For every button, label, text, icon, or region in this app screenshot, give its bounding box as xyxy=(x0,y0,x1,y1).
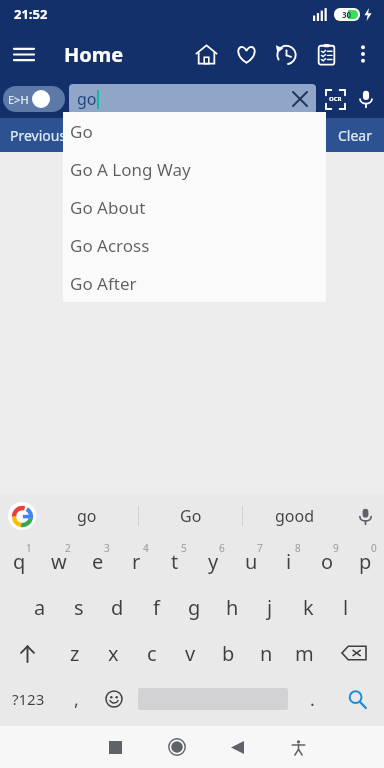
staticText: c xyxy=(147,640,157,667)
button[interactable]: Clear xyxy=(326,118,384,152)
staticText: z xyxy=(70,640,80,667)
staticText: Go A Long Way xyxy=(70,158,191,181)
button[interactable]: Backspace xyxy=(323,630,384,676)
staticText: OCR xyxy=(329,95,342,103)
button[interactable]: p xyxy=(346,538,384,584)
staticText: 21:52 xyxy=(14,5,48,23)
button[interactable]: More options xyxy=(346,30,380,78)
staticText: y xyxy=(208,548,219,575)
staticText: g xyxy=(188,594,201,621)
button[interactable]: f xyxy=(137,584,175,630)
button[interactable]: z xyxy=(55,630,94,676)
button[interactable]: j xyxy=(251,584,289,630)
button[interactable]: Scan text with camera xyxy=(320,84,350,114)
staticText: 9 xyxy=(333,541,339,555)
button[interactable]: Go About xyxy=(63,188,326,226)
button[interactable]: . xyxy=(293,676,331,722)
staticText: t xyxy=(171,548,179,575)
button[interactable]: x xyxy=(94,630,133,676)
staticText: q xyxy=(13,548,26,575)
staticText: u xyxy=(245,548,258,575)
button[interactable]: Go After xyxy=(63,264,326,302)
staticText: 30 xyxy=(342,9,352,20)
button[interactable]: Previous xyxy=(0,118,77,152)
button[interactable]: ?123 xyxy=(0,676,57,722)
button[interactable]: Google xyxy=(8,502,36,530)
button[interactable]: , xyxy=(57,676,95,722)
button[interactable]: h xyxy=(213,584,251,630)
staticText: n xyxy=(260,640,273,667)
staticText: good xyxy=(275,505,315,527)
button[interactable]: c xyxy=(133,630,171,676)
button[interactable]: Emoji xyxy=(95,676,133,722)
staticText: j xyxy=(267,594,273,621)
button[interactable]: i xyxy=(270,538,308,584)
staticText: l xyxy=(343,594,349,621)
button[interactable]: go xyxy=(69,84,316,114)
button[interactable]: Space xyxy=(133,676,293,722)
staticText: Previous xyxy=(10,126,67,145)
button[interactable]: Home xyxy=(64,41,124,68)
button[interactable]: Voice search xyxy=(350,83,382,115)
button[interactable]: d xyxy=(98,584,137,630)
button[interactable]: Recents xyxy=(85,726,146,768)
staticText: k xyxy=(303,594,314,621)
button[interactable]: y xyxy=(194,538,232,584)
button[interactable]: m xyxy=(285,630,323,676)
button[interactable]: s xyxy=(59,584,98,630)
staticText: Clear xyxy=(338,126,372,145)
staticText: s xyxy=(74,594,84,621)
button[interactable]: Menu xyxy=(0,30,48,78)
button[interactable]: Go A Long Way xyxy=(63,150,326,188)
staticText: go xyxy=(77,88,97,110)
button[interactable]: t xyxy=(156,538,194,584)
button[interactable]: Accessibility xyxy=(268,726,329,768)
staticText: w xyxy=(51,548,67,575)
button[interactable]: w xyxy=(39,538,78,584)
staticText: Go xyxy=(70,120,93,143)
button[interactable]: e xyxy=(78,538,117,584)
button[interactable]: o xyxy=(308,538,346,584)
button[interactable]: Word list xyxy=(306,30,346,78)
staticText: a xyxy=(34,594,46,621)
button[interactable]: History xyxy=(266,30,306,78)
staticText: E>H xyxy=(8,92,29,107)
button[interactable]: g xyxy=(175,584,213,630)
staticText: Go xyxy=(180,505,202,527)
staticText: f xyxy=(153,594,160,621)
staticText: r xyxy=(132,548,141,575)
staticText: go xyxy=(77,505,97,527)
button[interactable]: b xyxy=(209,630,247,676)
button[interactable]: a xyxy=(20,584,59,630)
button[interactable]: Favorites xyxy=(226,30,266,78)
button[interactable]: Home screen xyxy=(186,30,226,78)
button[interactable]: go xyxy=(36,494,138,538)
button[interactable]: u xyxy=(232,538,270,584)
button[interactable]: Voice input xyxy=(346,497,384,535)
button[interactable]: good xyxy=(243,494,346,538)
staticText: p xyxy=(359,548,372,575)
button[interactable]: Back xyxy=(207,726,268,768)
button[interactable]: English to Hebrew toggle xyxy=(3,86,65,112)
button[interactable]: Clear text xyxy=(286,85,314,113)
button[interactable]: Go Across xyxy=(63,226,326,264)
staticText: b xyxy=(222,640,235,667)
button[interactable]: Home xyxy=(146,726,207,768)
button[interactable]: v xyxy=(171,630,209,676)
button[interactable]: k xyxy=(289,584,327,630)
button[interactable]: Go xyxy=(63,112,326,150)
staticText: e xyxy=(92,548,104,575)
button[interactable]: Go xyxy=(139,494,242,538)
staticText: o xyxy=(321,548,334,575)
button[interactable]: r xyxy=(117,538,156,584)
button[interactable]: n xyxy=(247,630,285,676)
button[interactable]: Shift xyxy=(0,630,55,676)
button[interactable]: q xyxy=(0,538,39,584)
staticText: m xyxy=(295,640,314,667)
staticText: 3 xyxy=(104,541,110,555)
button[interactable]: Search xyxy=(331,676,384,722)
staticText: i xyxy=(286,548,292,575)
staticText: 2 xyxy=(65,541,71,555)
button[interactable]: l xyxy=(327,584,365,630)
staticText: . xyxy=(310,687,315,712)
